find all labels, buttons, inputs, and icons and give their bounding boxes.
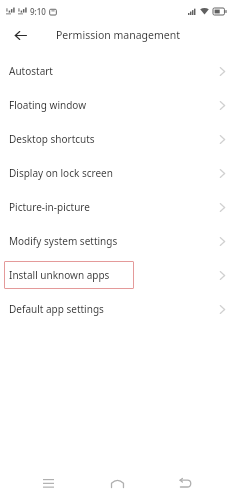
staticText: Default app settings (9, 302, 104, 316)
button[interactable]: Back (165, 468, 205, 498)
button[interactable]: Display on lock screen (0, 156, 233, 190)
staticText: Autostart (9, 64, 53, 78)
staticText: Desktop shortcuts (9, 132, 95, 146)
staticText: Display on lock screen (9, 166, 113, 180)
staticText: Install unknown apps (9, 268, 110, 282)
staticText: Picture-in-picture (9, 200, 90, 214)
button[interactable]: Back (9, 24, 31, 46)
button[interactable]: Recents (28, 468, 68, 498)
button[interactable]: Floating window (0, 88, 233, 122)
button[interactable]: Default app settings (0, 292, 233, 326)
staticText: 9:10 (30, 6, 46, 17)
button[interactable]: Install unknown apps (0, 258, 233, 292)
button[interactable]: Modify system settings (0, 224, 233, 258)
button[interactable]: Desktop shortcuts (0, 122, 233, 156)
staticText: Modify system settings (9, 234, 118, 248)
button[interactable]: Picture-in-picture (0, 190, 233, 224)
staticText: Floating window (9, 98, 87, 112)
staticText: Permission management (56, 28, 180, 42)
button[interactable]: Autostart (0, 54, 233, 88)
button[interactable]: Home (97, 468, 137, 498)
